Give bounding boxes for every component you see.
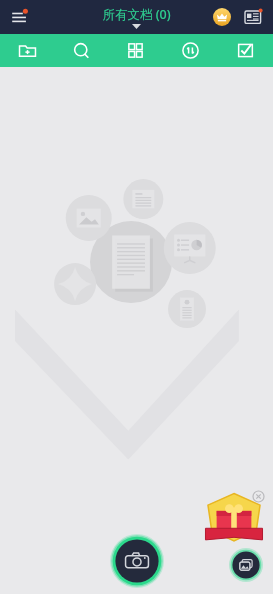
button[interactable]: 新手任务 <box>203 490 265 548</box>
button[interactable]: Select <box>218 34 273 67</box>
button[interactable]: New folder <box>0 34 54 67</box>
button[interactable]: Grid view <box>108 34 163 67</box>
button[interactable]: Sort <box>163 34 218 67</box>
staticText: 所有文档 (0) <box>102 6 171 23</box>
button[interactable]: Menu <box>6 2 36 32</box>
button[interactable]: 所有文档 (0) <box>102 6 171 29</box>
button[interactable]: VIP <box>209 4 235 30</box>
button[interactable]: Close <box>252 490 265 503</box>
button[interactable]: Scan with camera <box>110 534 164 588</box>
button[interactable]: News <box>239 3 267 31</box>
button[interactable]: Search <box>54 34 108 67</box>
button[interactable]: Gallery import <box>229 548 263 582</box>
